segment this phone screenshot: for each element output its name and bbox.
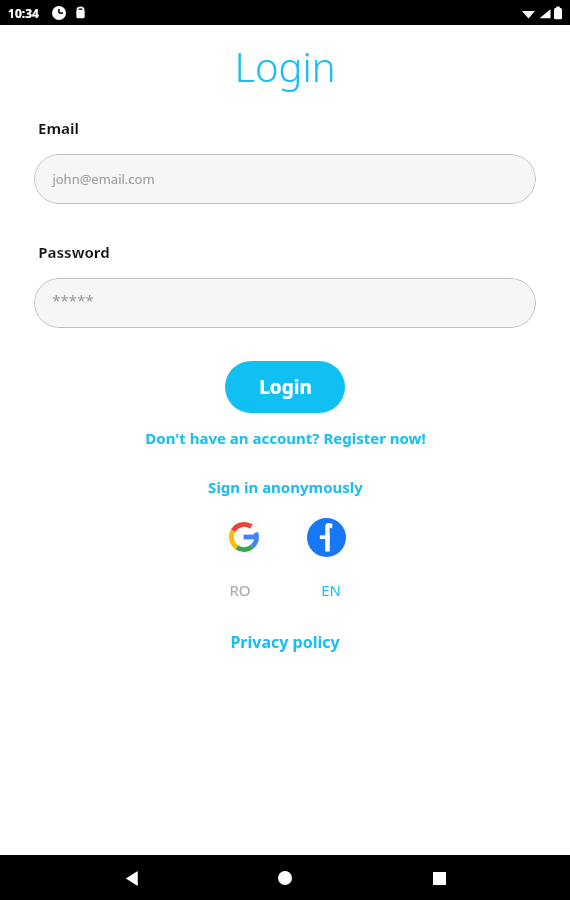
staticText: Password (38, 242, 110, 262)
button[interactable]: Sign in anonymously (0, 472, 570, 502)
staticText: Login (259, 374, 312, 400)
button[interactable]: Sign in with Google (223, 516, 265, 558)
staticText: john@email.com (52, 170, 155, 188)
staticText: EN (321, 580, 341, 600)
staticText: ***** (52, 290, 94, 310)
button[interactable]: Home (263, 856, 307, 900)
button[interactable]: john@email.com (34, 154, 536, 204)
staticText: Email (38, 118, 79, 138)
button[interactable]: RO (221, 572, 259, 608)
button[interactable]: Sign in with Facebook (305, 516, 347, 558)
staticText: Don't have an account? Register now! (145, 428, 426, 448)
button[interactable]: Login (225, 361, 345, 413)
button[interactable]: Recent apps (417, 856, 461, 900)
button[interactable]: Privacy policy (0, 626, 570, 658)
button[interactable]: Back (110, 856, 154, 900)
staticText: Sign in anonymously (208, 477, 363, 497)
button[interactable]: Don't have an account? Register now! (0, 423, 570, 453)
staticText: 10:34 (8, 5, 39, 21)
staticText: Login (234, 39, 336, 93)
staticText: RO (229, 580, 251, 600)
button[interactable]: ***** (34, 278, 536, 328)
staticText: Privacy policy (230, 631, 340, 653)
button[interactable]: EN (313, 572, 349, 608)
